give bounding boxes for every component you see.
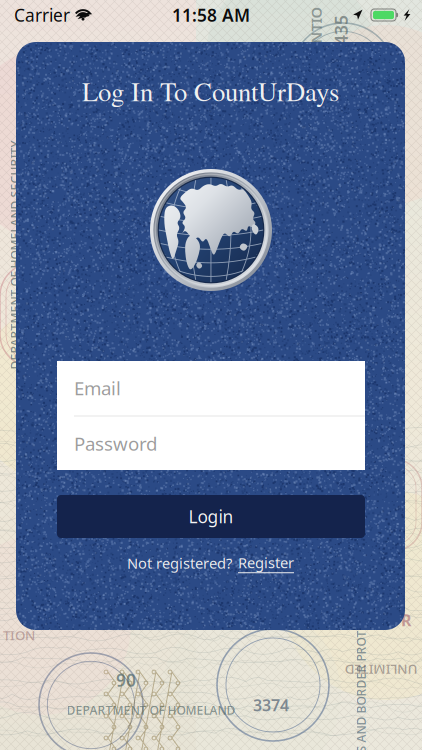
staticText: Carrier bbox=[14, 3, 70, 26]
staticText: Not registered? bbox=[127, 553, 232, 573]
button[interactable]: Not registered? bbox=[16, 550, 405, 576]
staticText: 90 bbox=[116, 668, 136, 691]
staticText: CUSTOMS AND BORDER PROTECTION bbox=[252, 687, 422, 703]
staticText: Login bbox=[188, 505, 233, 528]
staticText: TION bbox=[3, 626, 35, 644]
staticText: Log In To CountUrDays bbox=[82, 73, 339, 109]
staticText: 435 bbox=[326, 18, 356, 41]
button[interactable]: Login bbox=[57, 495, 365, 538]
staticText: Email bbox=[74, 376, 121, 400]
staticText: PR bbox=[391, 609, 411, 631]
staticText: NTIO bbox=[297, 15, 334, 35]
staticText: DEPARTMENT OF HOMELAND SECURITY bbox=[0, 247, 129, 263]
staticText: Password bbox=[74, 431, 157, 456]
staticText: DEPARTMENT OF HOMELAND bbox=[66, 702, 235, 718]
staticText: UNLIMITED bbox=[344, 661, 417, 679]
staticText: 11:58 AM bbox=[172, 3, 250, 26]
staticText: 3374 bbox=[253, 694, 289, 716]
staticText: Register bbox=[238, 553, 294, 572]
